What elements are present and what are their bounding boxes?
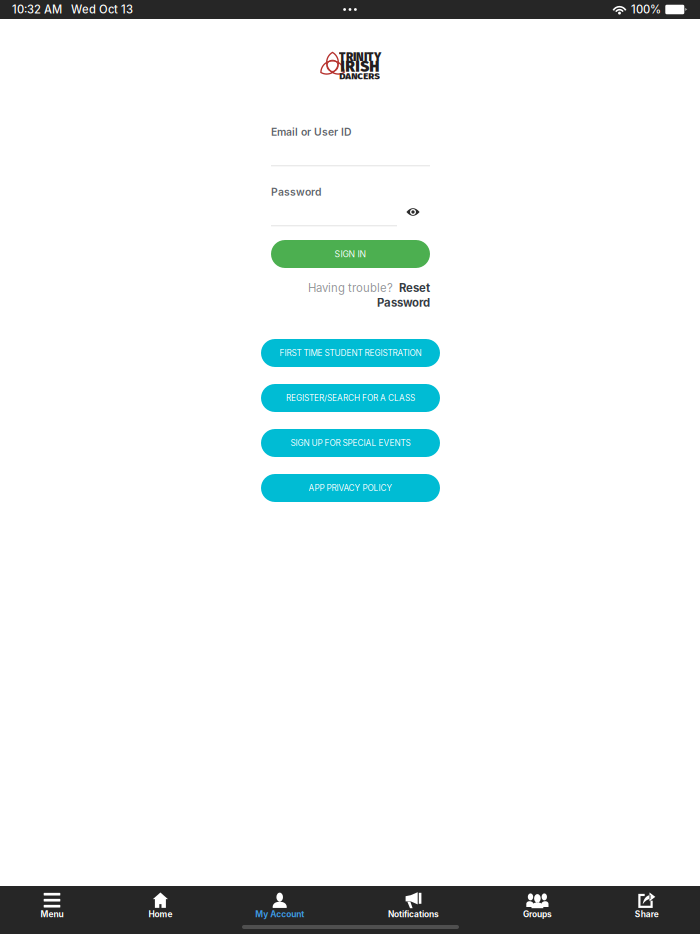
staticText: Email or User ID (271, 126, 352, 138)
staticText: Home (148, 909, 172, 919)
staticText: FIRST TIME STUDENT REGISTRATION (279, 348, 421, 358)
button[interactable]: Show password (402, 202, 424, 222)
button[interactable]: Groups (507, 886, 567, 934)
staticText: APP PRIVACY POLICY (308, 483, 392, 493)
button[interactable]: APP PRIVACY POLICY (261, 474, 440, 502)
staticText: SIGN UP FOR SPECIAL EVENTS (290, 438, 410, 448)
staticText: Having trouble? (308, 281, 393, 295)
staticText: Share (635, 909, 659, 919)
button[interactable]: Home (130, 886, 190, 934)
staticText: 100% (631, 3, 661, 16)
staticText: IRISH (340, 57, 379, 76)
staticText: Password (377, 296, 430, 309)
staticText: SIGN IN (334, 249, 366, 259)
button[interactable]: SIGN IN (271, 240, 430, 268)
staticText: DANCERS (339, 70, 380, 82)
button[interactable]: Menu (22, 886, 82, 934)
staticText: Menu (40, 909, 63, 919)
staticText: Reset (399, 281, 430, 295)
staticText: REGISTER/SEARCH FOR A CLASS (286, 393, 415, 403)
button[interactable]: Having trouble? (271, 281, 430, 313)
staticText: Wed Oct 13 (71, 3, 133, 16)
staticText: TRINITY (339, 50, 381, 64)
staticText: 10:32 AM (12, 3, 62, 16)
staticText: Password (271, 186, 321, 198)
staticText: Notifications (388, 909, 439, 919)
button[interactable]: REGISTER/SEARCH FOR A CLASS (261, 384, 440, 412)
staticText: My Account (255, 909, 304, 919)
button[interactable]: Share (617, 886, 677, 934)
button[interactable]: Notifications (383, 886, 443, 934)
button[interactable]: FIRST TIME STUDENT REGISTRATION (261, 339, 440, 367)
button[interactable]: SIGN UP FOR SPECIAL EVENTS (261, 429, 440, 457)
staticText: Groups (523, 909, 552, 919)
button[interactable]: My Account (250, 886, 310, 934)
